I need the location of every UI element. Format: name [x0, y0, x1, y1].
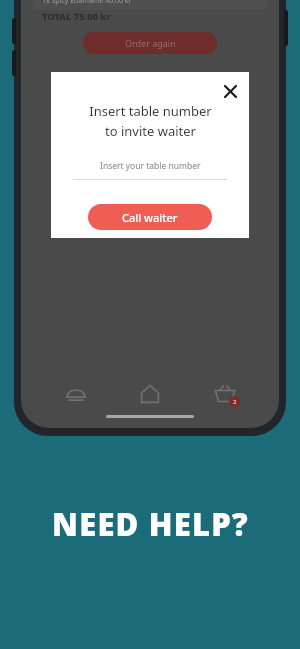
button[interactable]: Call waiter: [88, 204, 212, 230]
staticText: Insert table number: [89, 102, 212, 120]
staticText: Insert your table number: [100, 160, 201, 172]
staticText: to invite waiter: [105, 122, 196, 140]
button[interactable]: Menu: [56, 374, 96, 414]
staticText: 2: [233, 398, 237, 406]
staticText: NEED HELP?: [52, 503, 249, 545]
staticText: TOTAL 75.00 kr: [42, 10, 111, 23]
button[interactable]: Insert your table number: [73, 160, 227, 180]
button[interactable]: Basket, 2 items: [205, 374, 245, 414]
button[interactable]: Order again: [83, 32, 217, 54]
button[interactable]: Close: [217, 78, 243, 104]
staticText: Order again: [125, 37, 176, 49]
staticText: Call waiter: [122, 210, 178, 225]
button[interactable]: Home: [130, 374, 170, 414]
staticText: 1x Spicy Edamame 40.00 kr: [42, 0, 132, 6]
